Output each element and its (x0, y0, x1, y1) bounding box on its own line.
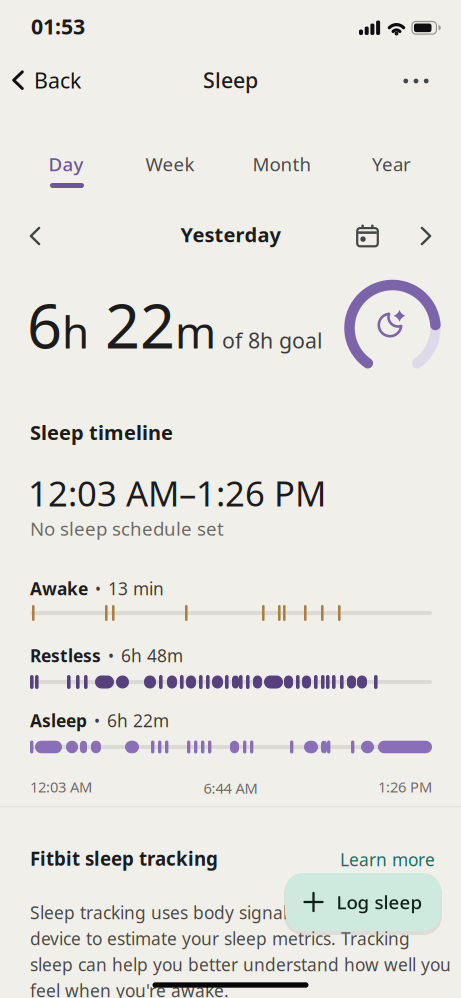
staticText: No sleep schedule set (30, 516, 224, 541)
staticText: Day (48, 152, 83, 176)
button[interactable]: Open calendar (356, 224, 379, 247)
button[interactable]: Previous day (29, 226, 40, 245)
button[interactable]: More options (403, 79, 429, 83)
staticText: Asleep (30, 709, 87, 732)
staticText: Year (372, 152, 411, 176)
staticText: feel when you're awake. (30, 979, 229, 998)
staticText: 1:26 PM (378, 777, 432, 796)
staticText: 22 (89, 284, 175, 365)
staticText: Sleep tracking uses body signals from yo… (30, 901, 381, 924)
button[interactable]: Learn more (340, 848, 435, 871)
staticText: Awake (30, 577, 88, 600)
staticText: • (108, 645, 114, 666)
button[interactable]: Year (372, 152, 411, 176)
staticText: Month (252, 152, 311, 176)
staticText: 12:03 AM–1:26 PM (28, 470, 326, 516)
button[interactable]: Back (12, 66, 81, 94)
button[interactable]: Month (252, 152, 311, 176)
button[interactable]: Day (48, 152, 83, 176)
staticText: 6h 22m (107, 709, 169, 732)
staticText: m (175, 302, 216, 361)
staticText: 6 (27, 284, 62, 365)
staticText: 6:44 AM (203, 778, 257, 798)
button[interactable]: Next day (420, 226, 431, 245)
staticText: device to estimate your sleep metrics. T… (30, 927, 410, 950)
staticText: Fitbit sleep tracking (30, 846, 218, 871)
staticText: Restless (30, 644, 101, 667)
staticText: Sleep timeline (30, 419, 173, 446)
staticText: of 8h goal (216, 326, 323, 354)
staticText: Log sleep (336, 890, 422, 914)
button[interactable]: Log sleep (285, 873, 441, 931)
staticText: 6h 48m (121, 644, 183, 667)
staticText: Learn more (340, 848, 435, 871)
button[interactable]: Week (145, 152, 194, 176)
staticText: 12:03 AM (30, 777, 92, 796)
staticText: sleep can help you better understand how… (30, 953, 451, 976)
staticText: Sleep (203, 66, 258, 94)
staticText: 01:53 (31, 12, 85, 40)
staticText: Back (34, 66, 81, 94)
staticText: Yesterday (180, 221, 280, 248)
staticText: • (95, 578, 101, 599)
staticText: • (94, 710, 100, 731)
staticText: 13 min (108, 577, 164, 600)
staticText: Week (145, 152, 194, 176)
staticText: h (62, 302, 89, 361)
